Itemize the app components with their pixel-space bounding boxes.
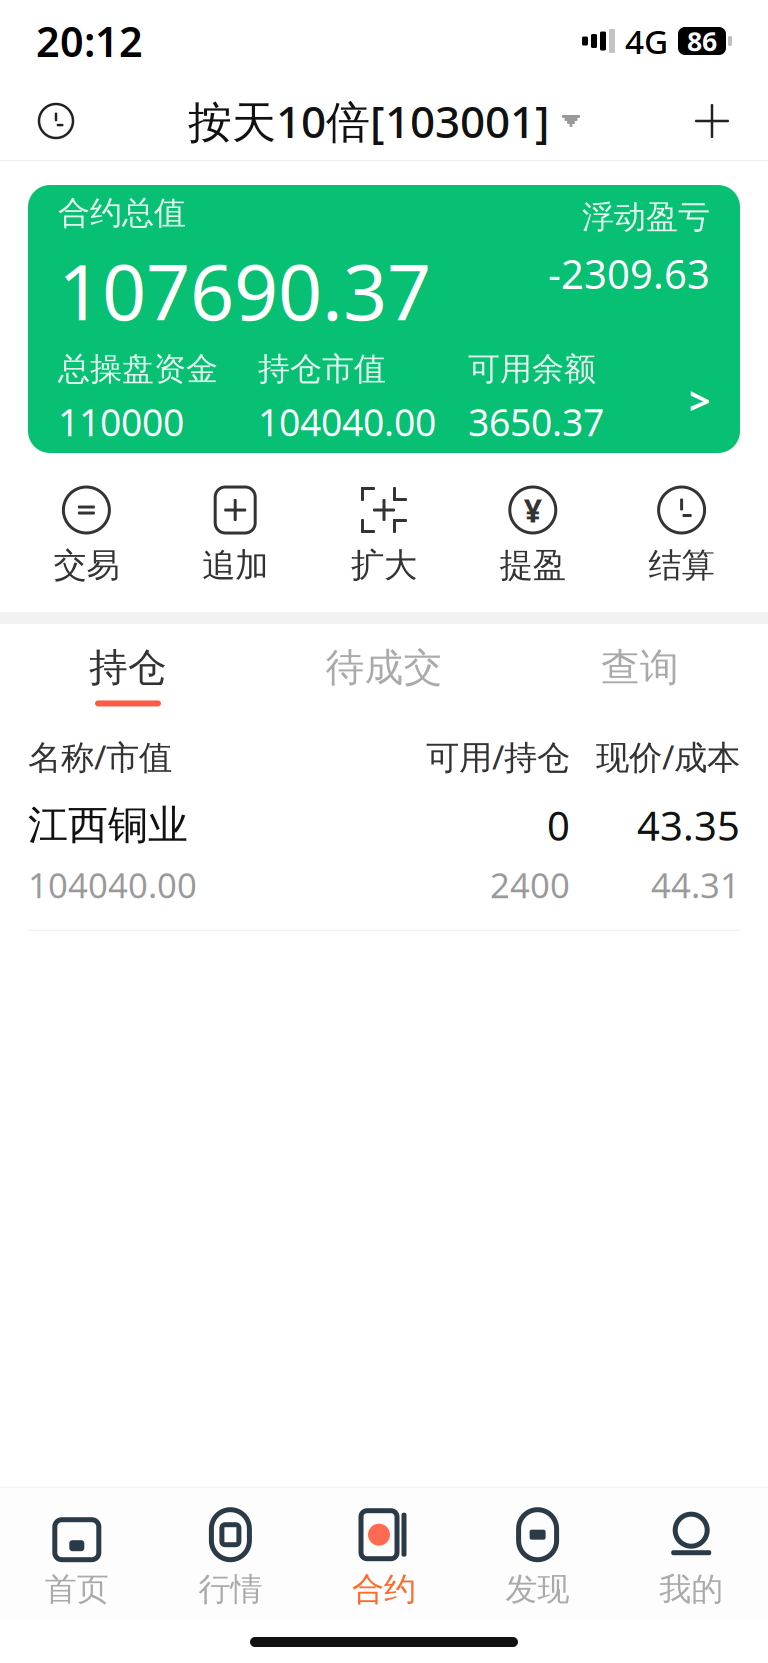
staticText: 持仓市值 bbox=[258, 350, 386, 389]
button[interactable]: 行情 bbox=[154, 1504, 307, 1613]
staticText: 4G bbox=[625, 19, 668, 63]
staticText: ¥ bbox=[524, 489, 542, 531]
staticText: 86 bbox=[687, 23, 717, 59]
staticText: 3650.37 bbox=[468, 397, 604, 446]
button[interactable]: 我的 bbox=[614, 1504, 768, 1613]
button[interactable]: 追加 bbox=[161, 481, 310, 590]
staticText: 结算 bbox=[649, 545, 715, 586]
button[interactable]: 按天10倍[103001] bbox=[188, 92, 580, 150]
button[interactable]: 扩大 bbox=[310, 481, 458, 590]
button[interactable]: 查询 bbox=[512, 638, 768, 712]
staticText: 待成交 bbox=[325, 644, 442, 691]
staticText: 可用/持仓 bbox=[426, 734, 570, 779]
button[interactable]: 首页 bbox=[0, 1504, 154, 1613]
button[interactable]: 合约 bbox=[307, 1504, 461, 1613]
staticText: 扩大 bbox=[351, 545, 417, 586]
staticText: 104040.00 bbox=[258, 397, 436, 446]
staticText: 首页 bbox=[45, 1570, 109, 1609]
button[interactable]: 持仓 bbox=[0, 638, 256, 712]
button[interactable]: ¥ bbox=[458, 481, 607, 590]
staticText: 合约 bbox=[352, 1570, 416, 1609]
button[interactable]: 交易 bbox=[12, 481, 161, 590]
staticText: 发现 bbox=[506, 1570, 570, 1609]
button[interactable]: 发现 bbox=[461, 1504, 614, 1613]
staticText: 行情 bbox=[198, 1570, 262, 1609]
button[interactable]: 江西铜业 bbox=[0, 779, 768, 930]
staticText: > bbox=[689, 376, 710, 425]
staticText: 20:12 bbox=[36, 14, 143, 68]
staticText: 110000 bbox=[58, 397, 184, 446]
button[interactable]: 结算 bbox=[607, 481, 756, 590]
staticText: 提盈 bbox=[500, 545, 566, 586]
staticText: 0 bbox=[547, 799, 570, 852]
staticText: 持仓 bbox=[89, 644, 167, 691]
staticText: 44.31 bbox=[651, 862, 740, 908]
staticText: 2400 bbox=[490, 862, 570, 908]
staticText: 追加 bbox=[202, 545, 268, 586]
button[interactable]: Add bbox=[682, 91, 742, 151]
button[interactable]: 合约总值 bbox=[0, 161, 768, 453]
staticText: 按天10倍[103001] bbox=[188, 92, 550, 150]
staticText: 可用余额 bbox=[468, 350, 596, 389]
staticText: 总操盘资金 bbox=[58, 350, 218, 389]
staticText: 浮动盈亏 bbox=[582, 198, 710, 237]
staticText: 江西铜业 bbox=[28, 801, 188, 850]
staticText: 107690.37 bbox=[58, 239, 431, 342]
staticText: 交易 bbox=[53, 545, 119, 586]
staticText: 查询 bbox=[601, 644, 679, 691]
staticText: -2309.63 bbox=[548, 247, 710, 300]
staticText: 合约总值 bbox=[58, 194, 186, 233]
button[interactable]: History bbox=[26, 91, 86, 151]
staticText: 43.35 bbox=[637, 799, 740, 852]
staticText: 104040.00 bbox=[28, 862, 197, 908]
staticText: 名称/市值 bbox=[28, 734, 172, 779]
staticText: 现价/成本 bbox=[596, 734, 740, 779]
button[interactable]: 待成交 bbox=[256, 638, 512, 712]
staticText: 我的 bbox=[659, 1570, 723, 1609]
